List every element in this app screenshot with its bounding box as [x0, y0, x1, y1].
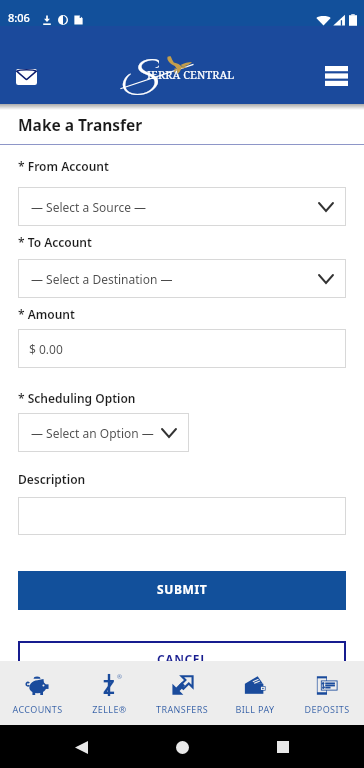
button[interactable]: Home: [162, 727, 202, 767]
staticText: Make a Transfer: [18, 114, 143, 135]
button[interactable]: TRANSFERS: [146, 661, 218, 725]
staticText: DEPOSITS: [304, 703, 350, 715]
button[interactable]: Back: [61, 727, 101, 767]
button[interactable]: Menu: [315, 54, 358, 97]
staticText: ZELLE®: [92, 703, 127, 715]
button[interactable]: BILL PAY: [219, 661, 291, 725]
staticText: — Select an Option —: [31, 425, 154, 441]
staticText: ACCOUNTS: [12, 703, 63, 715]
staticText: ®: [117, 673, 122, 681]
staticText: TRANSFERS: [156, 703, 208, 715]
button[interactable]: Z: [73, 661, 145, 725]
button[interactable]: $ 0.00: [18, 329, 346, 368]
button[interactable]: ACCOUNTS: [1, 661, 73, 725]
button[interactable]: [18, 497, 346, 535]
staticText: Description: [18, 471, 86, 487]
staticText: — Select a Destination —: [31, 271, 173, 287]
staticText: * Amount: [18, 306, 75, 322]
staticText: S: [121, 57, 159, 103]
button[interactable]: CANCEL: [18, 641, 346, 680]
staticText: IERRA CENTRAL: [147, 67, 235, 82]
staticText: — Select a Source —: [31, 199, 147, 215]
staticText: Z: [103, 673, 115, 697]
staticText: SUBMIT: [157, 581, 208, 597]
staticText: 8:06: [8, 10, 30, 25]
button[interactable]: — Select a Destination —: [18, 259, 346, 298]
staticText: * To Account: [18, 234, 92, 250]
staticText: BILL PAY: [235, 703, 275, 715]
button[interactable]: SUBMIT: [18, 571, 346, 610]
staticText: * Scheduling Option: [18, 390, 136, 406]
staticText: $ 0.00: [29, 341, 63, 357]
button[interactable]: — Select a Source —: [18, 187, 346, 226]
staticText: CANCEL: [157, 651, 208, 667]
button[interactable]: Messages: [5, 56, 47, 98]
staticText: * From Account: [18, 158, 109, 174]
button[interactable]: Recents: [263, 727, 303, 767]
button[interactable]: DEPOSITS: [291, 661, 363, 725]
button[interactable]: — Select an Option —: [18, 413, 189, 452]
